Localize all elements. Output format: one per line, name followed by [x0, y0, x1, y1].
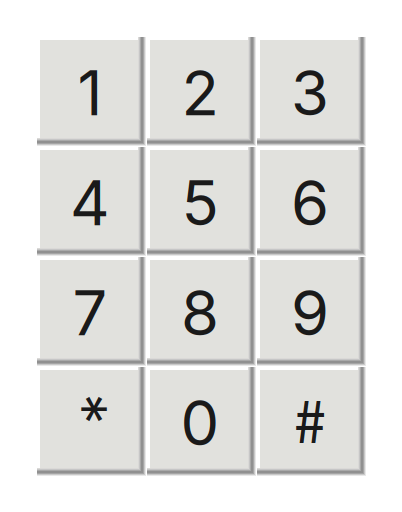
staticText: 0	[180, 386, 219, 460]
staticText: 9	[291, 276, 329, 350]
button[interactable]: 9	[260, 260, 360, 360]
button[interactable]: 7	[40, 260, 140, 360]
button[interactable]: #	[260, 370, 360, 470]
staticText: 5	[181, 166, 218, 240]
staticText: 2	[181, 56, 218, 130]
staticText: 8	[181, 276, 219, 350]
staticText: *	[79, 377, 109, 468]
staticText: 1	[77, 56, 102, 130]
button[interactable]: 4	[40, 150, 140, 250]
staticText: 4	[70, 166, 110, 240]
button[interactable]: 2	[150, 40, 250, 140]
staticText: 3	[291, 56, 329, 130]
button[interactable]: *	[40, 370, 140, 470]
staticText: #	[294, 377, 326, 468]
button[interactable]: 5	[150, 150, 250, 250]
button[interactable]: 8	[150, 260, 250, 360]
button[interactable]: 0	[150, 370, 250, 470]
staticText: 6	[291, 166, 329, 240]
button[interactable]: 1	[40, 40, 140, 140]
button[interactable]: 6	[260, 150, 360, 250]
staticText: 7	[72, 276, 107, 350]
button[interactable]: 3	[260, 40, 360, 140]
